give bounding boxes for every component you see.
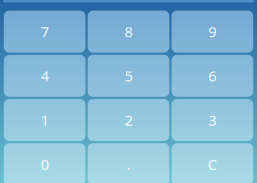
button[interactable]: . — [88, 143, 169, 183]
button[interactable]: 0 — [4, 143, 85, 183]
staticText: 3 — [208, 110, 216, 130]
staticText: 8 — [124, 22, 132, 41]
button[interactable]: 2 — [88, 99, 169, 141]
staticText: 7 — [41, 22, 49, 41]
button[interactable]: 8 — [88, 11, 169, 53]
button[interactable]: 1 — [4, 99, 85, 141]
button[interactable]: 7 — [4, 11, 85, 53]
button[interactable]: C — [171, 143, 253, 183]
button[interactable]: 4 — [4, 55, 85, 97]
button[interactable]: 6 — [171, 55, 253, 97]
staticText: 5 — [124, 66, 132, 86]
staticText: . — [126, 154, 130, 174]
staticText: C — [208, 154, 217, 174]
button[interactable]: 9 — [171, 11, 253, 53]
staticText: 6 — [208, 66, 216, 86]
button[interactable]: 3 — [171, 99, 253, 141]
staticText: 2 — [124, 110, 132, 130]
staticText: 9 — [208, 22, 216, 41]
staticText: 1 — [41, 110, 49, 130]
staticText: 0 — [41, 154, 49, 174]
button[interactable]: 5 — [88, 55, 169, 97]
staticText: 4 — [41, 66, 49, 86]
